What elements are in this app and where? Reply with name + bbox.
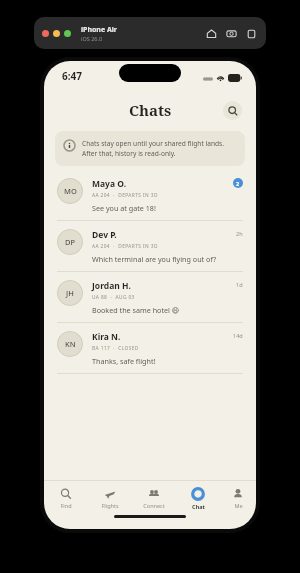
staticText: AA 204 · DEPARTS IN 3O	[92, 192, 158, 199]
staticText: iPhone Air	[81, 25, 117, 35]
staticText: KN	[65, 339, 76, 349]
button[interactable]: DP	[44, 221, 256, 272]
staticText: Flights	[101, 502, 119, 509]
staticText: Thanks, safe flight!	[92, 356, 156, 366]
staticText: Dev P.	[92, 229, 117, 241]
button[interactable]: Flights	[88, 488, 132, 509]
staticText: See you at gate 18!	[92, 203, 156, 213]
button[interactable]: Find	[44, 488, 88, 509]
staticText: 14d	[233, 332, 243, 339]
staticText: Me	[234, 502, 243, 509]
staticText: Chats	[129, 100, 172, 120]
button[interactable]: Screenshot	[224, 26, 238, 40]
staticText: 2h	[236, 230, 243, 237]
staticText: Connect	[143, 502, 165, 509]
button[interactable]: JH	[44, 272, 256, 323]
button[interactable]: MO	[44, 170, 256, 221]
button[interactable]: Home	[204, 26, 218, 40]
staticText: MO	[64, 186, 77, 196]
button[interactable]: Rotate	[244, 26, 258, 40]
button[interactable]: Connect	[132, 488, 176, 509]
staticText: DP	[65, 237, 76, 247]
button[interactable]: Chat	[176, 487, 220, 510]
button[interactable]: Search	[223, 101, 242, 120]
staticText: Chat	[192, 503, 205, 510]
staticText: Which terminal are you flying out of?	[92, 254, 217, 264]
staticText: BA 117 · CLOSED	[92, 345, 139, 352]
button[interactable]: Chats stay open until your shared flight…	[55, 131, 245, 166]
staticText: Kira N.	[92, 331, 121, 343]
staticText: 6:47	[62, 69, 82, 83]
staticText: 2	[236, 180, 240, 187]
staticText: Find	[60, 502, 72, 509]
button[interactable]: KN	[44, 323, 256, 374]
staticText: AA 204 · DEPARTS IN 3O	[92, 243, 158, 250]
staticText: JH	[66, 288, 74, 298]
staticText: UA 88 · AUG 03	[92, 294, 135, 301]
staticText: iOS 26.0	[81, 35, 103, 42]
button[interactable]: Me	[220, 488, 256, 509]
staticText: 1d	[236, 281, 243, 288]
staticText: Booked the same hotel 😄	[92, 305, 180, 315]
staticText: Chats stay open until your shared flight…	[82, 139, 236, 158]
staticText: Jordan H.	[92, 280, 131, 292]
staticText: Maya O.	[92, 178, 127, 190]
